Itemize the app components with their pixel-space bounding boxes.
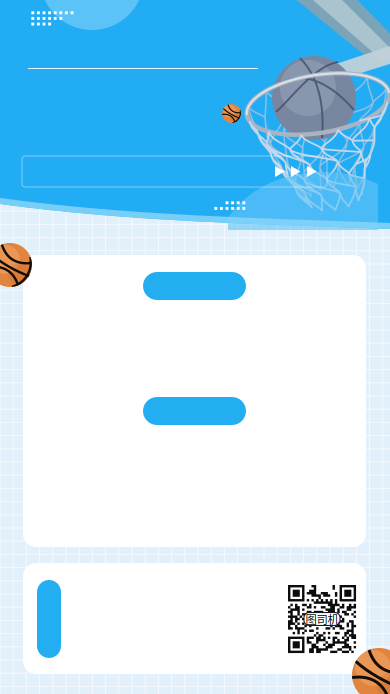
button[interactable]: Secondary action xyxy=(143,397,246,425)
staticText: 图司机 xyxy=(305,611,338,627)
button[interactable]: Primary action xyxy=(143,272,246,300)
